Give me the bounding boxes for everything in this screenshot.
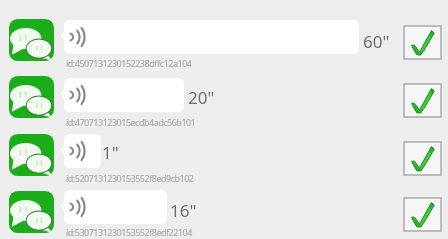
- button[interactable]: Play voice message: [61, 190, 167, 224]
- staticText: 20": [188, 86, 215, 109]
- button[interactable]: WeChat: [9, 191, 54, 233]
- staticText: 1": [102, 141, 119, 164]
- staticText: id:5207131230153552f8ed9cb102: [66, 172, 194, 184]
- button[interactable]: WeChat: [9, 134, 54, 176]
- button[interactable]: Selected: [404, 198, 441, 231]
- button[interactable]: Selected: [404, 142, 441, 175]
- staticText: id:470713123015ecdb4adc56b101: [66, 116, 196, 128]
- button[interactable]: WeChat: [9, 76, 54, 118]
- button[interactable]: Play voice message: [61, 134, 101, 168]
- staticText: id:5307131230153552f8edf22104: [66, 226, 192, 238]
- staticText: 16": [170, 199, 197, 222]
- button[interactable]: Selected: [404, 84, 441, 117]
- staticText: id:4507131230152238dffc12a104: [66, 57, 192, 69]
- button[interactable]: Play voice message: [61, 78, 184, 112]
- staticText: 60": [363, 30, 390, 53]
- button[interactable]: Selected: [404, 26, 441, 59]
- button[interactable]: WeChat: [9, 19, 54, 61]
- button[interactable]: Play voice message: [61, 20, 359, 54]
